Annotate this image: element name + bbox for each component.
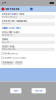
button[interactable]: Menu: [30, 8, 33, 10]
staticText: Use DHCP (recommended): [4, 57, 26, 59]
staticText: WPA2-PSK [AES]: [2, 48, 16, 50]
button[interactable]: Auto (11): [1, 41, 54, 44]
staticText: NETGEAR-5G: [2, 34, 12, 36]
staticText: •••••••••: [2, 23, 11, 25]
staticText: Save Settings: [3, 62, 13, 64]
button[interactable]: Use DHCP (recommended): [1, 57, 54, 60]
staticText: Channel: [1, 38, 7, 41]
button[interactable]: Cancel: [15, 61, 22, 64]
button[interactable]: NETGEAR-5G: [1, 34, 54, 36]
staticText: Available Access Points: [1, 27, 20, 29]
staticText: Cancel: [16, 62, 21, 64]
button[interactable]: MyHomeNetwork: [1, 16, 54, 18]
staticText: Access Point Name: [1, 31, 19, 34]
button[interactable]: Save: [10, 88, 21, 93]
button[interactable]: Refresh: [32, 88, 46, 93]
button[interactable]: Save Settings: [1, 61, 14, 64]
staticText: MyHomeNetwork: [2, 16, 17, 18]
staticText: Save: [14, 89, 18, 92]
button[interactable]: Available Access Points: [1, 27, 54, 30]
staticText: Show Passphrase: [4, 52, 18, 55]
staticText: Refresh: [35, 89, 42, 92]
staticText: 9:41: [2, 2, 6, 4]
button[interactable]: Show Passphrase: [1, 52, 54, 55]
staticText: NETGEAR: [5, 7, 19, 11]
staticText: Network Name (SSID): [1, 13, 24, 15]
staticText: Security Mode: [1, 45, 14, 48]
staticText: Auto (11): [2, 41, 10, 43]
button[interactable]: •••••••••: [1, 23, 54, 25]
button[interactable]: WPA2-PSK [AES]: [1, 48, 54, 51]
staticText: Network Key (Passphrase): [1, 20, 27, 22]
